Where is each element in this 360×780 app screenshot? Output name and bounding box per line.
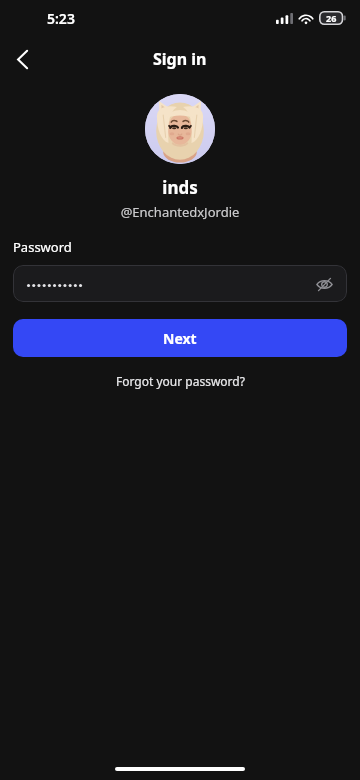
staticText: Sign in: [153, 48, 207, 70]
staticText: Password: [13, 238, 72, 256]
button[interactable]: Show password: [13, 265, 347, 302]
staticText: 26: [326, 12, 337, 24]
button[interactable]: Back: [0, 37, 44, 81]
staticText: Next: [163, 329, 197, 348]
button[interactable]: Forgot your password?: [104, 369, 257, 393]
staticText: inds: [0, 176, 360, 199]
staticText: Forgot your password?: [116, 373, 245, 389]
button[interactable]: Profile picture: [145, 94, 215, 164]
staticText: @EnchantedxJordie: [0, 203, 360, 221]
staticText: 5:23: [47, 9, 75, 28]
button[interactable]: Next: [13, 319, 347, 357]
button[interactable]: Show password: [311, 271, 337, 297]
